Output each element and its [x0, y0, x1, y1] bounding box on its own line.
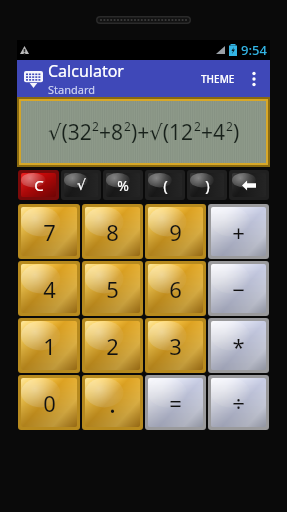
staticText: =: [169, 388, 182, 418]
staticText: 6: [169, 274, 182, 304]
staticText: )+√(12: [131, 118, 194, 147]
button[interactable]: 0: [18, 375, 80, 430]
staticText: ÷: [232, 388, 245, 418]
button[interactable]: 3: [145, 318, 206, 373]
button[interactable]: 6: [145, 261, 206, 316]
staticText: .: [109, 385, 116, 420]
button[interactable]: 2: [82, 318, 143, 373]
staticText: (: [163, 175, 168, 195]
staticText: C: [34, 175, 44, 195]
staticText: 1: [43, 331, 56, 361]
button[interactable]: √: [61, 170, 101, 200]
staticText: 4: [43, 274, 56, 304]
staticText: ): [233, 118, 240, 147]
staticText: ): [205, 175, 210, 195]
button[interactable]: .: [82, 375, 143, 430]
staticText: 3: [169, 331, 182, 361]
button[interactable]: 5: [82, 261, 143, 316]
staticText: −: [232, 274, 245, 304]
staticText: THEME: [201, 72, 235, 86]
staticText: 2: [92, 118, 99, 134]
staticText: Calculator: [48, 60, 124, 82]
button[interactable]: C: [18, 170, 59, 200]
button[interactable]: 1: [18, 318, 80, 373]
staticText: 2: [194, 118, 201, 134]
staticText: 8: [106, 217, 119, 247]
staticText: 5: [106, 274, 119, 304]
button[interactable]: 4: [18, 261, 80, 316]
button[interactable]: %: [103, 170, 143, 200]
button[interactable]: ): [187, 170, 227, 200]
staticText: √: [77, 177, 86, 193]
staticText: +4: [201, 118, 226, 147]
staticText: 9: [169, 217, 182, 247]
button[interactable]: 7: [18, 204, 80, 259]
button[interactable]: +: [208, 204, 269, 259]
staticText: +: [232, 217, 245, 247]
staticText: %: [117, 176, 129, 195]
staticText: Standard: [48, 82, 96, 97]
button[interactable]: ÷: [208, 375, 269, 430]
staticText: *: [232, 331, 245, 361]
staticText: 2: [226, 118, 233, 134]
staticText: √(32: [48, 118, 92, 147]
button[interactable]: More options: [243, 68, 265, 90]
staticText: 7: [43, 217, 56, 247]
staticText: 2: [124, 118, 131, 134]
button[interactable]: =: [145, 375, 206, 430]
button[interactable]: 9: [145, 204, 206, 259]
staticText: 0: [43, 388, 56, 418]
button[interactable]: THEME: [197, 66, 239, 92]
button[interactable]: (: [145, 170, 185, 200]
button[interactable]: 8: [82, 204, 143, 259]
button[interactable]: −: [208, 261, 269, 316]
staticText: 9:54: [241, 41, 267, 59]
staticText: +8: [99, 118, 124, 147]
staticText: 2: [106, 331, 119, 361]
button[interactable]: Backspace: [229, 170, 269, 200]
button[interactable]: *: [208, 318, 269, 373]
